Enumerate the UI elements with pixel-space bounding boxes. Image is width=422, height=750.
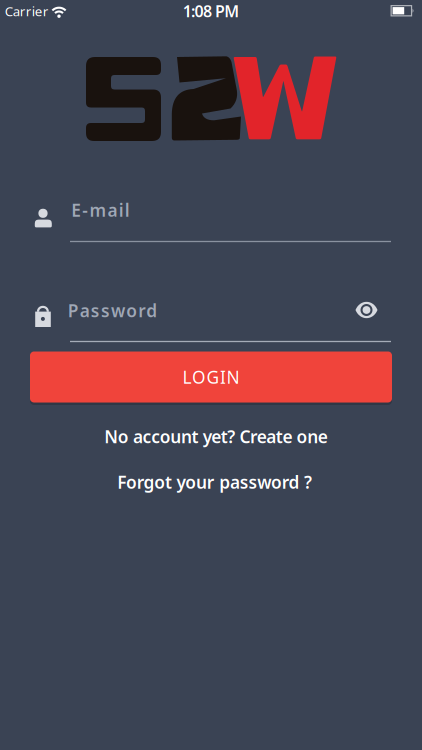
button[interactable]: E-mail xyxy=(30,194,392,244)
button[interactable]: Forgot your password ? xyxy=(117,470,312,493)
staticText: 1:08 PM xyxy=(183,0,239,22)
staticText: Forgot your password ? xyxy=(117,470,312,493)
staticText: No account yet? Create one xyxy=(104,425,328,448)
button[interactable]: LOGIN xyxy=(30,351,392,402)
staticText: E-mail xyxy=(71,198,130,221)
button[interactable]: Show password xyxy=(349,295,383,325)
staticText: Password xyxy=(68,299,157,322)
button[interactable]: No account yet? Create one xyxy=(104,425,328,448)
staticText: LOGIN xyxy=(182,365,239,388)
button[interactable]: Password xyxy=(30,294,392,346)
staticText: Carrier xyxy=(5,2,49,20)
